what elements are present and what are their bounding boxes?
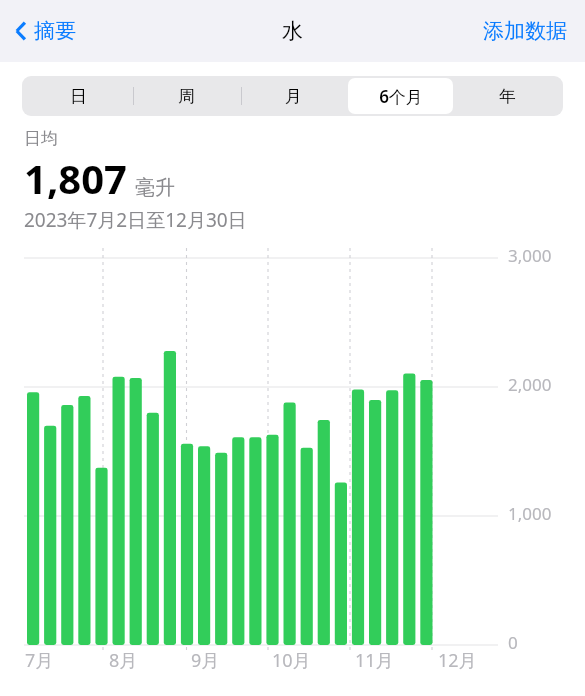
staticText: 3,000 xyxy=(508,244,552,267)
staticText: 0 xyxy=(508,631,518,654)
staticText: 日均 xyxy=(24,128,58,149)
staticText: 7月 xyxy=(25,648,54,673)
staticText: 月 xyxy=(285,86,302,107)
staticText: 毫升 xyxy=(135,175,175,200)
button[interactable]: 添加数据 xyxy=(479,12,571,50)
button[interactable]: 周 xyxy=(133,78,239,114)
staticText: 1,807 xyxy=(24,151,127,205)
staticText: 1,000 xyxy=(508,502,552,525)
staticText: 11月 xyxy=(355,648,394,673)
button[interactable]: 月 xyxy=(241,78,346,114)
staticText: 8月 xyxy=(109,648,138,673)
staticText: 周 xyxy=(178,86,195,107)
staticText: 摘要 xyxy=(34,18,76,44)
staticText: 2,000 xyxy=(508,373,552,396)
staticText: 日 xyxy=(70,86,87,107)
staticText: 9月 xyxy=(191,648,220,673)
staticText: 6个月 xyxy=(379,85,423,108)
staticText: 添加数据 xyxy=(483,18,567,44)
button[interactable]: 日 xyxy=(25,78,131,114)
staticText: 年 xyxy=(499,86,516,107)
staticText: 12月 xyxy=(438,648,477,673)
staticText: 10月 xyxy=(272,648,311,673)
button[interactable]: 摘要 xyxy=(10,12,80,50)
staticText: 2023年7月2日至12月30日 xyxy=(24,207,247,233)
button[interactable]: 年 xyxy=(455,78,560,114)
button[interactable]: 6个月 xyxy=(348,78,453,114)
staticText: 水 xyxy=(282,18,303,44)
